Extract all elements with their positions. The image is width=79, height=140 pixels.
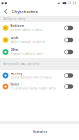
- button[interactable]: Office: [0, 46, 79, 58]
- button[interactable]: Back: [0, 7, 11, 16]
- button[interactable]: Nová scéna: [0, 124, 79, 140]
- staticText: Světlo v kuchyni a jídelně: [11, 40, 46, 44]
- staticText: Ztlumí světla při videohovoru: [11, 76, 52, 79]
- button[interactable]: Home: [0, 81, 79, 92]
- button[interactable]: Toggle scene: [64, 50, 73, 54]
- staticText: Po příchodu domů rozsvítí světla: [11, 87, 56, 90]
- staticText: Chytrá scéna: [11, 9, 37, 14]
- staticText: Lunch: [11, 36, 19, 40]
- staticText: Oblíbené scény: [3, 17, 25, 21]
- button[interactable]: Toggle scene: [64, 38, 73, 42]
- staticText: Pracovní osvětlení stolu: [11, 52, 44, 56]
- staticText: Nová scéna: [32, 130, 46, 134]
- staticText: Home: [11, 83, 20, 86]
- button[interactable]: Toggle scene: [64, 84, 73, 89]
- staticText: Office: [11, 48, 19, 52]
- staticText: Večerní světlo v ložnici: [11, 28, 43, 32]
- button[interactable]: Lunch: [0, 34, 79, 46]
- staticText: Scény podle času a polohy: [3, 62, 39, 66]
- button[interactable]: Meeting: [0, 70, 79, 81]
- staticText: Bedroom: [11, 24, 25, 28]
- staticText: 10:24: [67, 1, 76, 5]
- staticText: Meeting: [11, 72, 23, 75]
- button[interactable]: Toggle scene: [64, 73, 73, 78]
- button[interactable]: Toggle scene: [64, 26, 73, 30]
- button[interactable]: Bedroom: [0, 22, 79, 34]
